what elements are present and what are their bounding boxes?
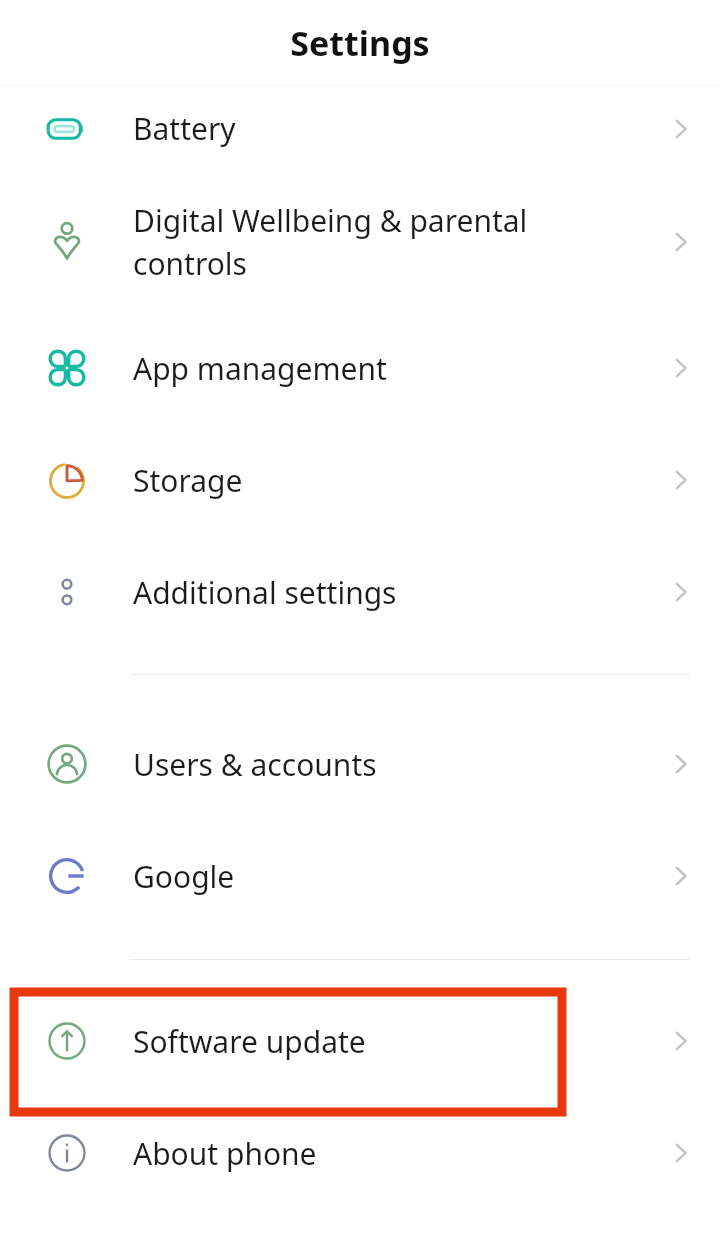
staticText: Storage bbox=[133, 460, 626, 501]
other: App management bbox=[0, 312, 133, 424]
button[interactable]: App management bbox=[0, 312, 720, 424]
staticText: Google bbox=[133, 856, 626, 897]
button[interactable]: Google bbox=[0, 820, 720, 932]
other: Software update bbox=[0, 985, 133, 1097]
other: Battery bbox=[0, 86, 133, 171]
staticText: Settings bbox=[290, 20, 430, 66]
staticText: Additional settings bbox=[133, 572, 626, 613]
other: Google bbox=[0, 820, 133, 932]
staticText: Battery bbox=[133, 108, 626, 149]
other: Storage bbox=[0, 424, 133, 536]
other: Additional settings bbox=[0, 536, 133, 648]
staticText: Digital Wellbeing & parental controls bbox=[133, 200, 626, 284]
staticText: Software update bbox=[133, 1021, 626, 1062]
staticText: Users & accounts bbox=[133, 744, 626, 785]
button[interactable]: Software update bbox=[0, 985, 720, 1097]
other: Users and accounts bbox=[0, 708, 133, 820]
button[interactable]: Digital Wellbeing bbox=[0, 171, 720, 312]
staticText: App management bbox=[133, 348, 626, 389]
button[interactable]: Additional settings bbox=[0, 536, 720, 648]
staticText: About phone bbox=[133, 1133, 626, 1174]
button[interactable]: Users and accounts bbox=[0, 708, 720, 820]
other: About phone bbox=[0, 1097, 133, 1209]
other: Digital Wellbeing bbox=[0, 171, 133, 312]
button[interactable]: About phone bbox=[0, 1097, 720, 1209]
button[interactable]: Storage bbox=[0, 424, 720, 536]
button[interactable]: Battery bbox=[0, 86, 720, 171]
